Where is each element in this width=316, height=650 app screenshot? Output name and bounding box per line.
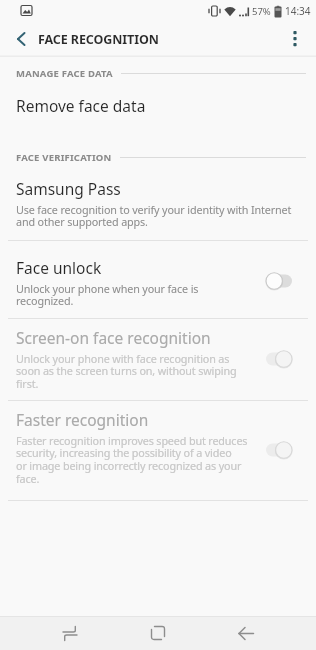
button[interactable] [282, 26, 308, 52]
staticText: Unlock your phone when your face is reco… [16, 281, 199, 308]
staticText: MANAGE FACE DATA [16, 67, 113, 80]
staticText: Unlock your phone with face recognition … [16, 351, 237, 391]
staticText: Faster recognition [16, 409, 149, 430]
staticText: Remove face data [16, 95, 146, 116]
staticText: 14:34 [285, 4, 311, 18]
button[interactable]: Face unlock [0, 257, 316, 308]
staticText: FACE RECOGNITION [38, 31, 159, 48]
button[interactable]: Samsung Pass [0, 178, 316, 229]
button[interactable] [40, 616, 100, 650]
button[interactable]: Faster recognition [0, 409, 316, 486]
staticText: Faster recognition improves speed but re… [16, 433, 248, 486]
staticText: 57% [252, 5, 271, 18]
staticText: FACE VERIFICATION [16, 151, 112, 164]
button[interactable] [6, 24, 36, 54]
staticText: Use face recognition to verify your iden… [16, 202, 292, 229]
staticText: Face unlock [16, 257, 102, 278]
staticText: Samsung Pass [16, 178, 121, 199]
button[interactable]: Screen-on face recognition [0, 327, 316, 391]
staticText: Screen-on face recognition [16, 327, 211, 348]
button[interactable]: Remove face data [0, 89, 316, 121]
button[interactable] [216, 616, 276, 650]
button[interactable] [128, 616, 188, 650]
